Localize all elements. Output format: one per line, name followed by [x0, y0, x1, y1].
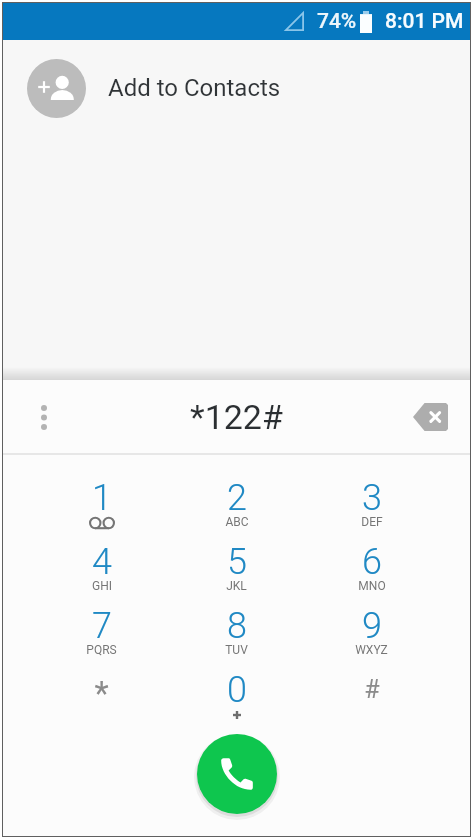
staticText: 7 — [92, 605, 112, 647]
button[interactable]: 8 — [169, 605, 304, 669]
staticText: 8 — [227, 605, 247, 647]
button[interactable]: # — [304, 669, 439, 733]
button[interactable]: Add to Contacts — [3, 48, 470, 128]
staticText: Add to Contacts — [108, 74, 281, 102]
button[interactable]: 6 — [304, 541, 439, 605]
button[interactable]: 5 — [169, 541, 304, 605]
staticText: 4 — [92, 541, 112, 583]
staticText: TUV — [225, 643, 248, 657]
staticText: WXYZ — [355, 643, 388, 657]
staticText: 0 — [227, 669, 247, 711]
staticText: 2 — [227, 477, 247, 519]
staticText: GHI — [92, 579, 112, 593]
staticText: 3 — [362, 477, 382, 519]
staticText: 5 — [227, 541, 247, 583]
staticText: # — [364, 675, 380, 704]
staticText: * — [94, 674, 109, 713]
staticText: PQRS — [86, 643, 117, 657]
staticText: 9 — [362, 605, 382, 647]
staticText: DEF — [361, 515, 383, 529]
staticText: 8:01 PM — [385, 9, 464, 34]
button[interactable]: Backspace — [405, 392, 455, 442]
staticText: 74% — [317, 9, 357, 34]
staticText: ABC — [225, 515, 249, 529]
button[interactable]: 3 — [304, 477, 439, 541]
button[interactable]: 1 — [34, 477, 169, 541]
button[interactable]: Call — [197, 734, 277, 814]
button[interactable]: More options — [21, 394, 67, 440]
button[interactable]: * — [34, 669, 169, 733]
button[interactable]: 7 — [34, 605, 169, 669]
button[interactable]: 2 — [169, 477, 304, 541]
staticText: *122# — [190, 397, 283, 437]
button[interactable]: 4 — [34, 541, 169, 605]
staticText: 1 — [92, 477, 112, 519]
button[interactable]: 0 — [169, 669, 304, 733]
staticText: JKL — [226, 579, 247, 593]
staticText: 6 — [362, 541, 382, 583]
button[interactable]: 9 — [304, 605, 439, 669]
staticText: MNO — [358, 579, 386, 593]
